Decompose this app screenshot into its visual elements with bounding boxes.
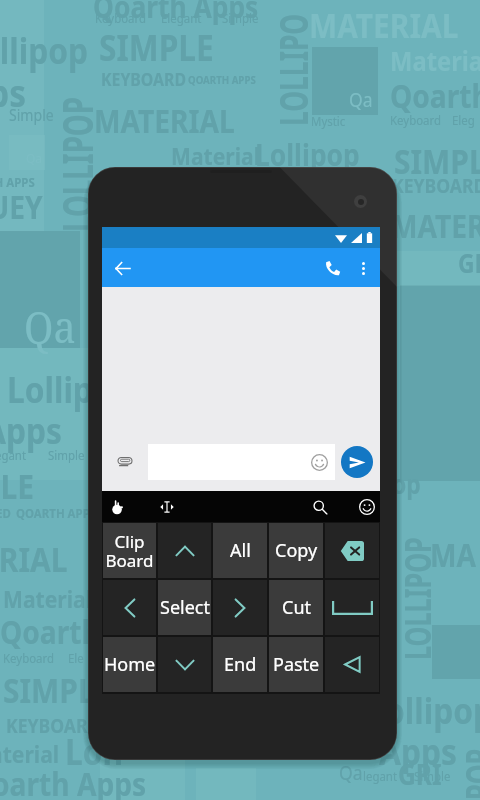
staticText: Lon (65, 727, 124, 776)
button[interactable] (148, 444, 335, 480)
staticText: Lollip (7, 365, 93, 414)
staticText: KEYBOARD (101, 67, 186, 92)
staticText: ED (0, 504, 11, 522)
button[interactable] (213, 580, 267, 635)
button[interactable]: space (325, 580, 379, 635)
button[interactable]: Copy (269, 523, 323, 578)
button[interactable]: del (325, 523, 379, 578)
staticText: Clip Board (105, 530, 154, 572)
staticText: ollipop (385, 686, 480, 735)
staticText: Keyboard (95, 9, 147, 27)
button[interactable] (103, 580, 156, 635)
staticText: Simple (9, 104, 54, 126)
button[interactable]: Emoji (354, 491, 380, 522)
staticText: Material (390, 42, 480, 79)
button[interactable]: Paste (269, 637, 323, 692)
staticText: ollipop (0, 26, 88, 75)
staticText: MATER (391, 204, 480, 248)
staticText: TH APPS (0, 173, 35, 191)
staticText: op (392, 466, 421, 501)
button[interactable]: enter (325, 637, 379, 692)
staticText: Eleg (452, 111, 475, 129)
staticText: Qoarth Apps (93, 0, 258, 27)
staticText: Qa (349, 86, 373, 113)
staticText: Lollipop (255, 134, 361, 175)
button[interactable]: Gesture typing (102, 491, 134, 522)
button[interactable] (158, 523, 211, 578)
staticText: Material (171, 139, 261, 172)
button[interactable]: Cursor control (151, 491, 183, 522)
staticText: MATERIAL (94, 99, 235, 143)
staticText: QOARTH APPS (16, 504, 96, 522)
staticText: Paste (273, 652, 320, 677)
staticText: All (230, 538, 251, 563)
button[interactable] (158, 637, 211, 692)
staticText: QOARTH APPS (188, 72, 256, 87)
staticText: SIMPL (3, 667, 95, 713)
staticText: Material (3, 582, 93, 615)
staticText: POP (454, 748, 480, 800)
button[interactable]: Cut (269, 580, 323, 635)
staticText: Qa (24, 296, 76, 356)
button[interactable]: All (213, 523, 267, 578)
staticText: Simple (414, 767, 451, 785)
staticText: LOLLIPO (265, 14, 319, 126)
staticText: Simple (222, 9, 259, 27)
staticText: Copy (275, 538, 318, 563)
staticText: KEYBOARD (392, 172, 480, 199)
staticText: ERIAL (0, 536, 68, 582)
staticText: Apps (379, 727, 457, 776)
button[interactable]: Clip Board (103, 523, 156, 578)
button[interactable]: More options (349, 254, 377, 282)
staticText: Apps (0, 406, 62, 455)
staticText: Simple (48, 446, 85, 464)
staticText: SIMPLE (99, 23, 214, 72)
staticText: aterial (0, 737, 59, 770)
staticText: ps (0, 66, 27, 118)
staticText: GF (458, 245, 480, 280)
staticText: UEY (0, 185, 43, 229)
staticText: Mystic (311, 112, 345, 130)
staticText: Elegant (161, 9, 201, 27)
staticText: Keyboard (390, 111, 442, 129)
staticText: LOLLIPOP (393, 537, 442, 660)
staticText: MATERIAL (309, 2, 459, 48)
staticText: SIMPLE (394, 138, 480, 184)
staticText: Qoarth A (390, 74, 480, 118)
button[interactable]: Select (158, 580, 211, 635)
staticText: GRI (398, 755, 442, 793)
staticText: LOLLIPOP (48, 97, 105, 232)
button[interactable]: Back (108, 254, 136, 282)
staticText: oarth Apps (0, 762, 147, 800)
staticText: Qoarth (0, 610, 100, 654)
button[interactable]: Send (341, 446, 373, 478)
button[interactable]: Call (317, 252, 349, 284)
staticText: Ele (68, 649, 84, 667)
staticText: End (224, 652, 257, 677)
staticText: Qa (339, 759, 363, 786)
staticText: legant (0, 446, 26, 464)
button[interactable]: Home (103, 637, 156, 692)
staticText: legant (363, 767, 397, 785)
button[interactable]: End (213, 637, 267, 692)
staticText: Home (104, 652, 156, 677)
staticText: KEYBOARD (6, 712, 101, 739)
staticText: Select (160, 595, 210, 620)
button[interactable]: Search (303, 491, 337, 522)
button[interactable]: Attach (102, 444, 148, 480)
staticText: PLE (0, 463, 35, 509)
staticText: MA (430, 533, 477, 577)
staticText: Cut (282, 595, 311, 620)
staticText: Keyboard (3, 649, 55, 667)
